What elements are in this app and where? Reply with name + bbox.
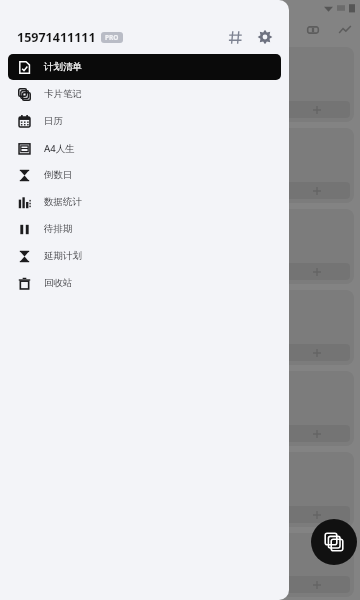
staticText: 计划清单 xyxy=(44,61,82,73)
staticText: 回收站 xyxy=(44,277,73,289)
button[interactable]: 卡片笔记 xyxy=(8,81,281,107)
button[interactable]: Tags xyxy=(221,23,249,51)
button[interactable]: 数据统计 xyxy=(8,189,281,215)
button[interactable]: 延期计划 xyxy=(8,243,281,269)
button[interactable]: 计划清单 xyxy=(8,54,281,80)
button[interactable]: 回收站 xyxy=(8,270,281,296)
button[interactable]: 日历 xyxy=(8,108,281,134)
button[interactable]: Settings xyxy=(251,23,279,51)
staticText: 15971411111 xyxy=(17,29,96,46)
staticText: 日历 xyxy=(44,115,63,127)
button[interactable]: 待排期 xyxy=(8,216,281,242)
staticText: PRO xyxy=(105,33,119,42)
staticText: 倒数日 xyxy=(44,169,73,181)
staticText: A4人生 xyxy=(44,142,75,155)
button[interactable]: 15971411111 xyxy=(17,29,96,46)
staticText: 待排期 xyxy=(44,223,73,235)
staticText: 卡片笔记 xyxy=(44,88,82,100)
button[interactable]: A4人生 xyxy=(8,135,281,161)
staticText: 数据统计 xyxy=(44,196,82,208)
button[interactable]: New card xyxy=(311,519,357,565)
staticText: 延期计划 xyxy=(44,250,82,262)
button[interactable]: 倒数日 xyxy=(8,162,281,188)
